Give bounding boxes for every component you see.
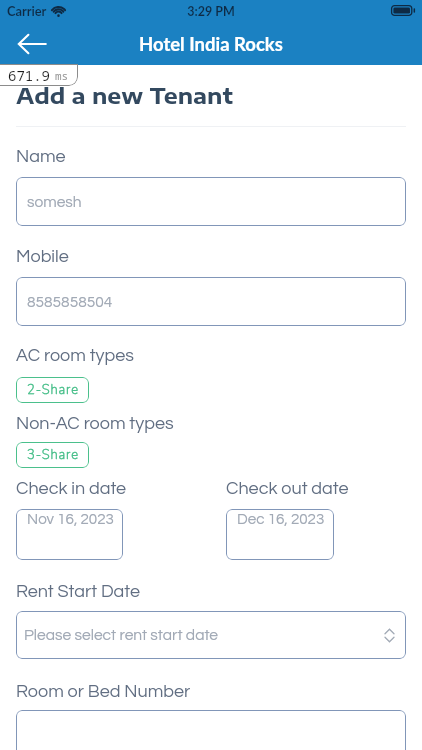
staticText: Rent Start Date [16,582,140,601]
button[interactable]: Nov 16, 2023 [16,509,123,560]
button[interactable]: Dec 16, 2023 [226,509,334,560]
staticText: Dec 16, 2023 [237,512,325,528]
staticText: somesh [27,194,82,210]
staticText: Check out date [226,479,349,498]
staticText: 2-Share [27,381,79,399]
staticText: Hotel India Rocks [139,33,283,55]
staticText: Add a new Tenant [16,81,233,109]
staticText: ms [55,68,69,83]
staticText: Nov 16, 2023 [27,512,114,528]
staticText: Carrier [7,3,47,18]
staticText: AC room types [16,346,134,365]
button[interactable]: Please select rent start date [16,611,406,659]
button[interactable]: 8585858504 [16,277,406,326]
staticText: 3:29 PM [0,4,422,19]
button[interactable]: Back [12,24,52,64]
button[interactable]: 2-Share [16,377,89,403]
staticText: Non-AC room types [16,414,174,433]
button[interactable] [16,710,406,750]
staticText: 3-Share [27,446,79,464]
staticText: Mobile [16,247,69,266]
staticText: Name [16,147,66,166]
staticText: 8585858504 [27,294,113,310]
button[interactable]: 3-Share [16,442,89,468]
staticText: Room or Bed Number [16,682,191,701]
staticText: Check in date [16,479,127,498]
staticText: 671.9 [8,66,50,85]
button[interactable]: somesh [16,177,406,226]
staticText: Please select rent start date [24,627,219,643]
